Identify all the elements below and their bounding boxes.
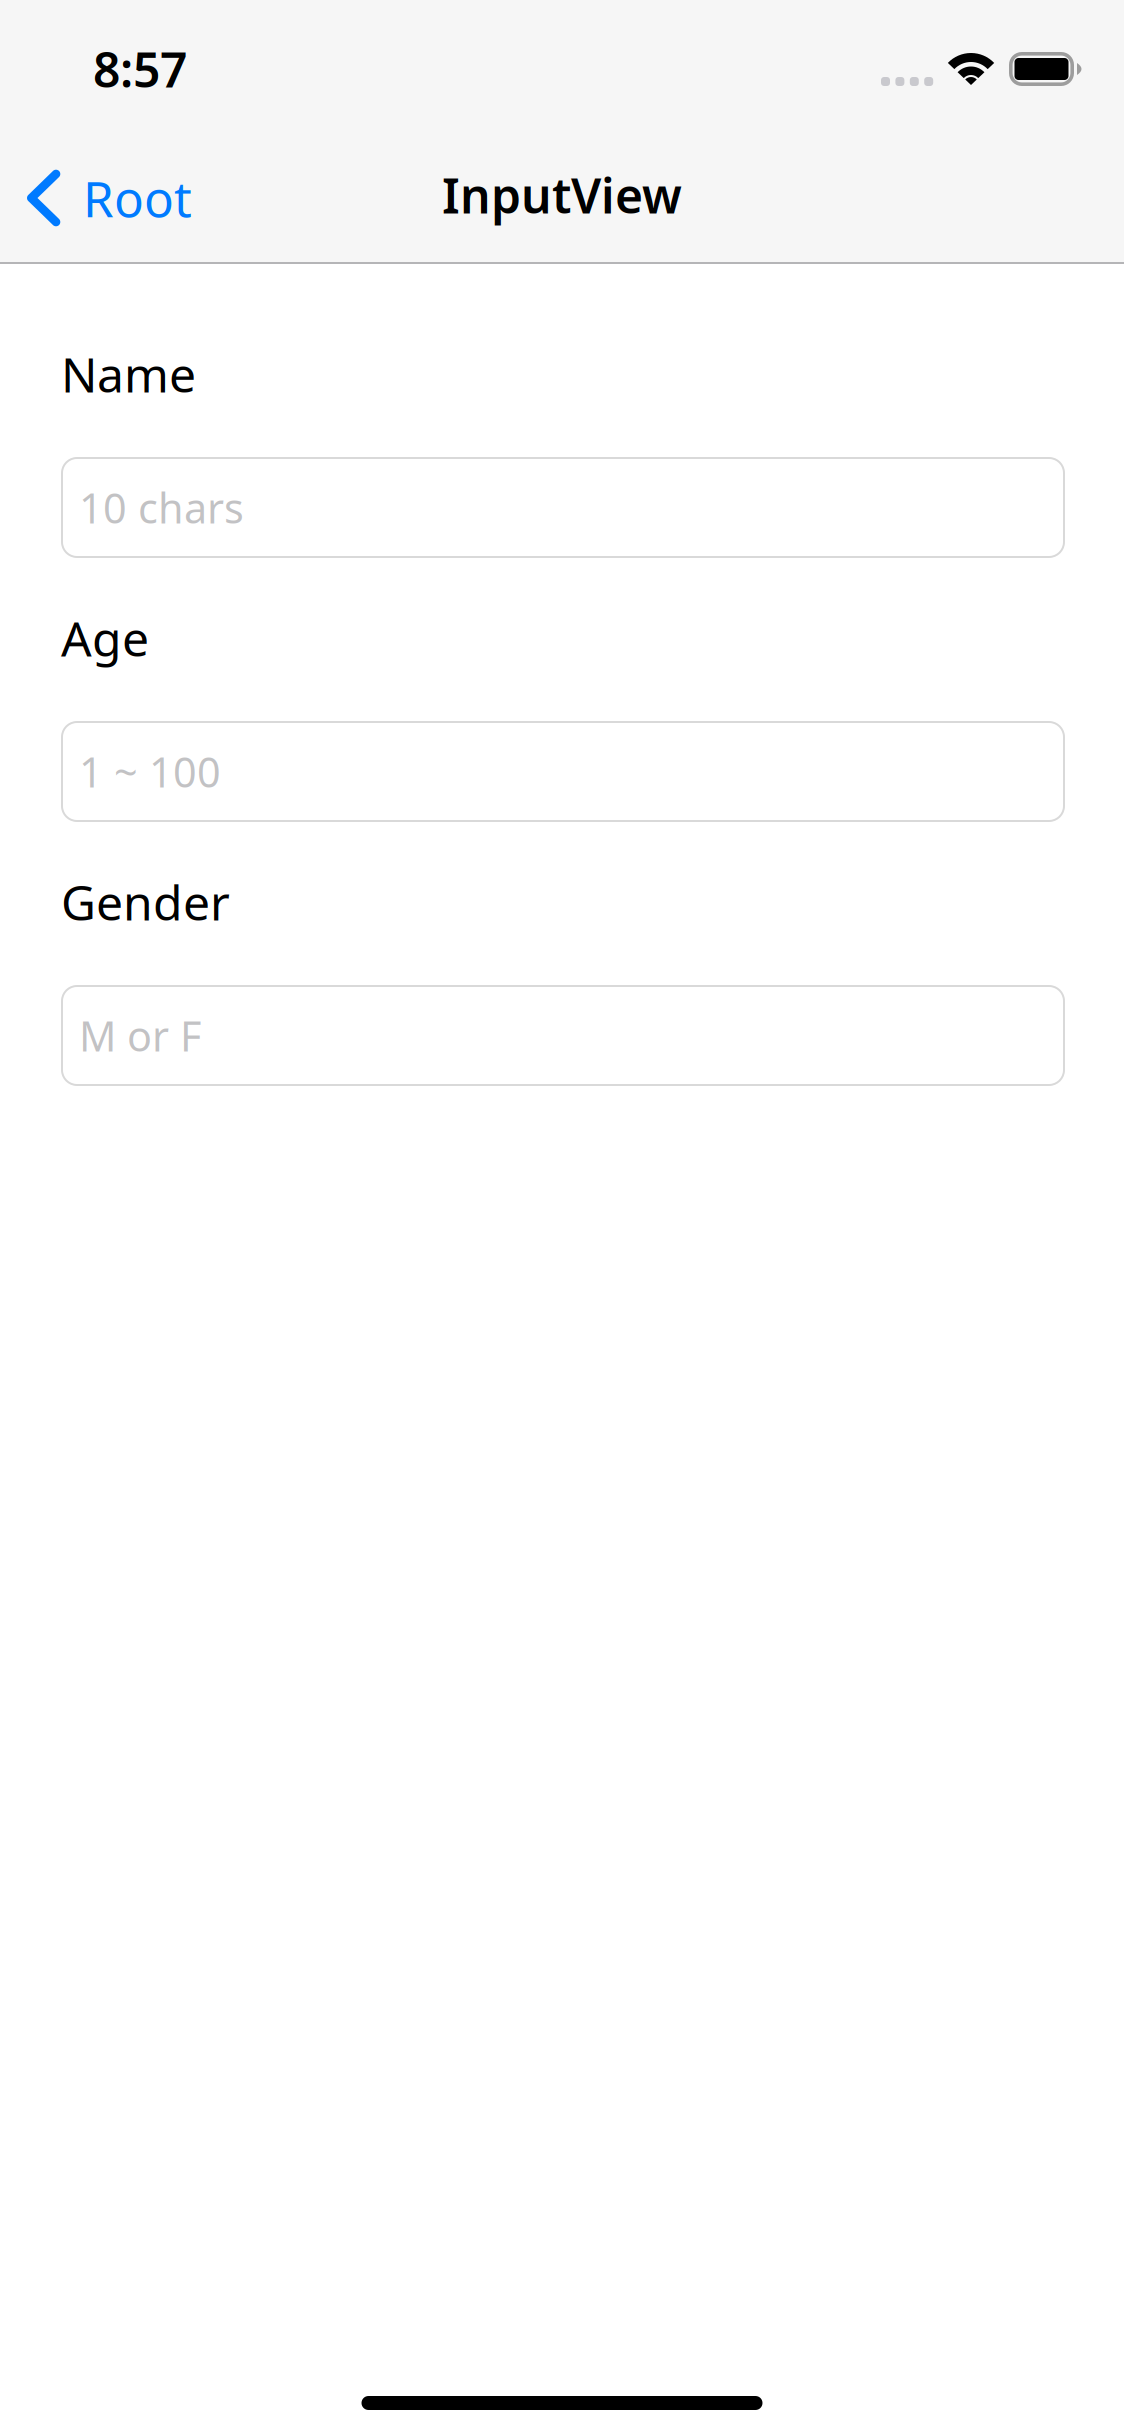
staticText: Root bbox=[83, 165, 192, 231]
staticText: 1 ~ 100 bbox=[79, 744, 221, 799]
staticText: 8:57 bbox=[93, 37, 187, 101]
button[interactable]: Name bbox=[61, 457, 1065, 558]
button[interactable]: Back to Root bbox=[0, 132, 206, 264]
staticText: Age bbox=[61, 606, 149, 670]
staticText: 10 chars bbox=[79, 480, 244, 535]
staticText: M or F bbox=[79, 1008, 201, 1063]
staticText: Gender bbox=[61, 870, 230, 934]
button[interactable]: Gender bbox=[61, 985, 1065, 1086]
staticText: Name bbox=[61, 342, 196, 406]
staticText: InputView bbox=[442, 163, 682, 227]
button[interactable]: Age bbox=[61, 721, 1065, 822]
